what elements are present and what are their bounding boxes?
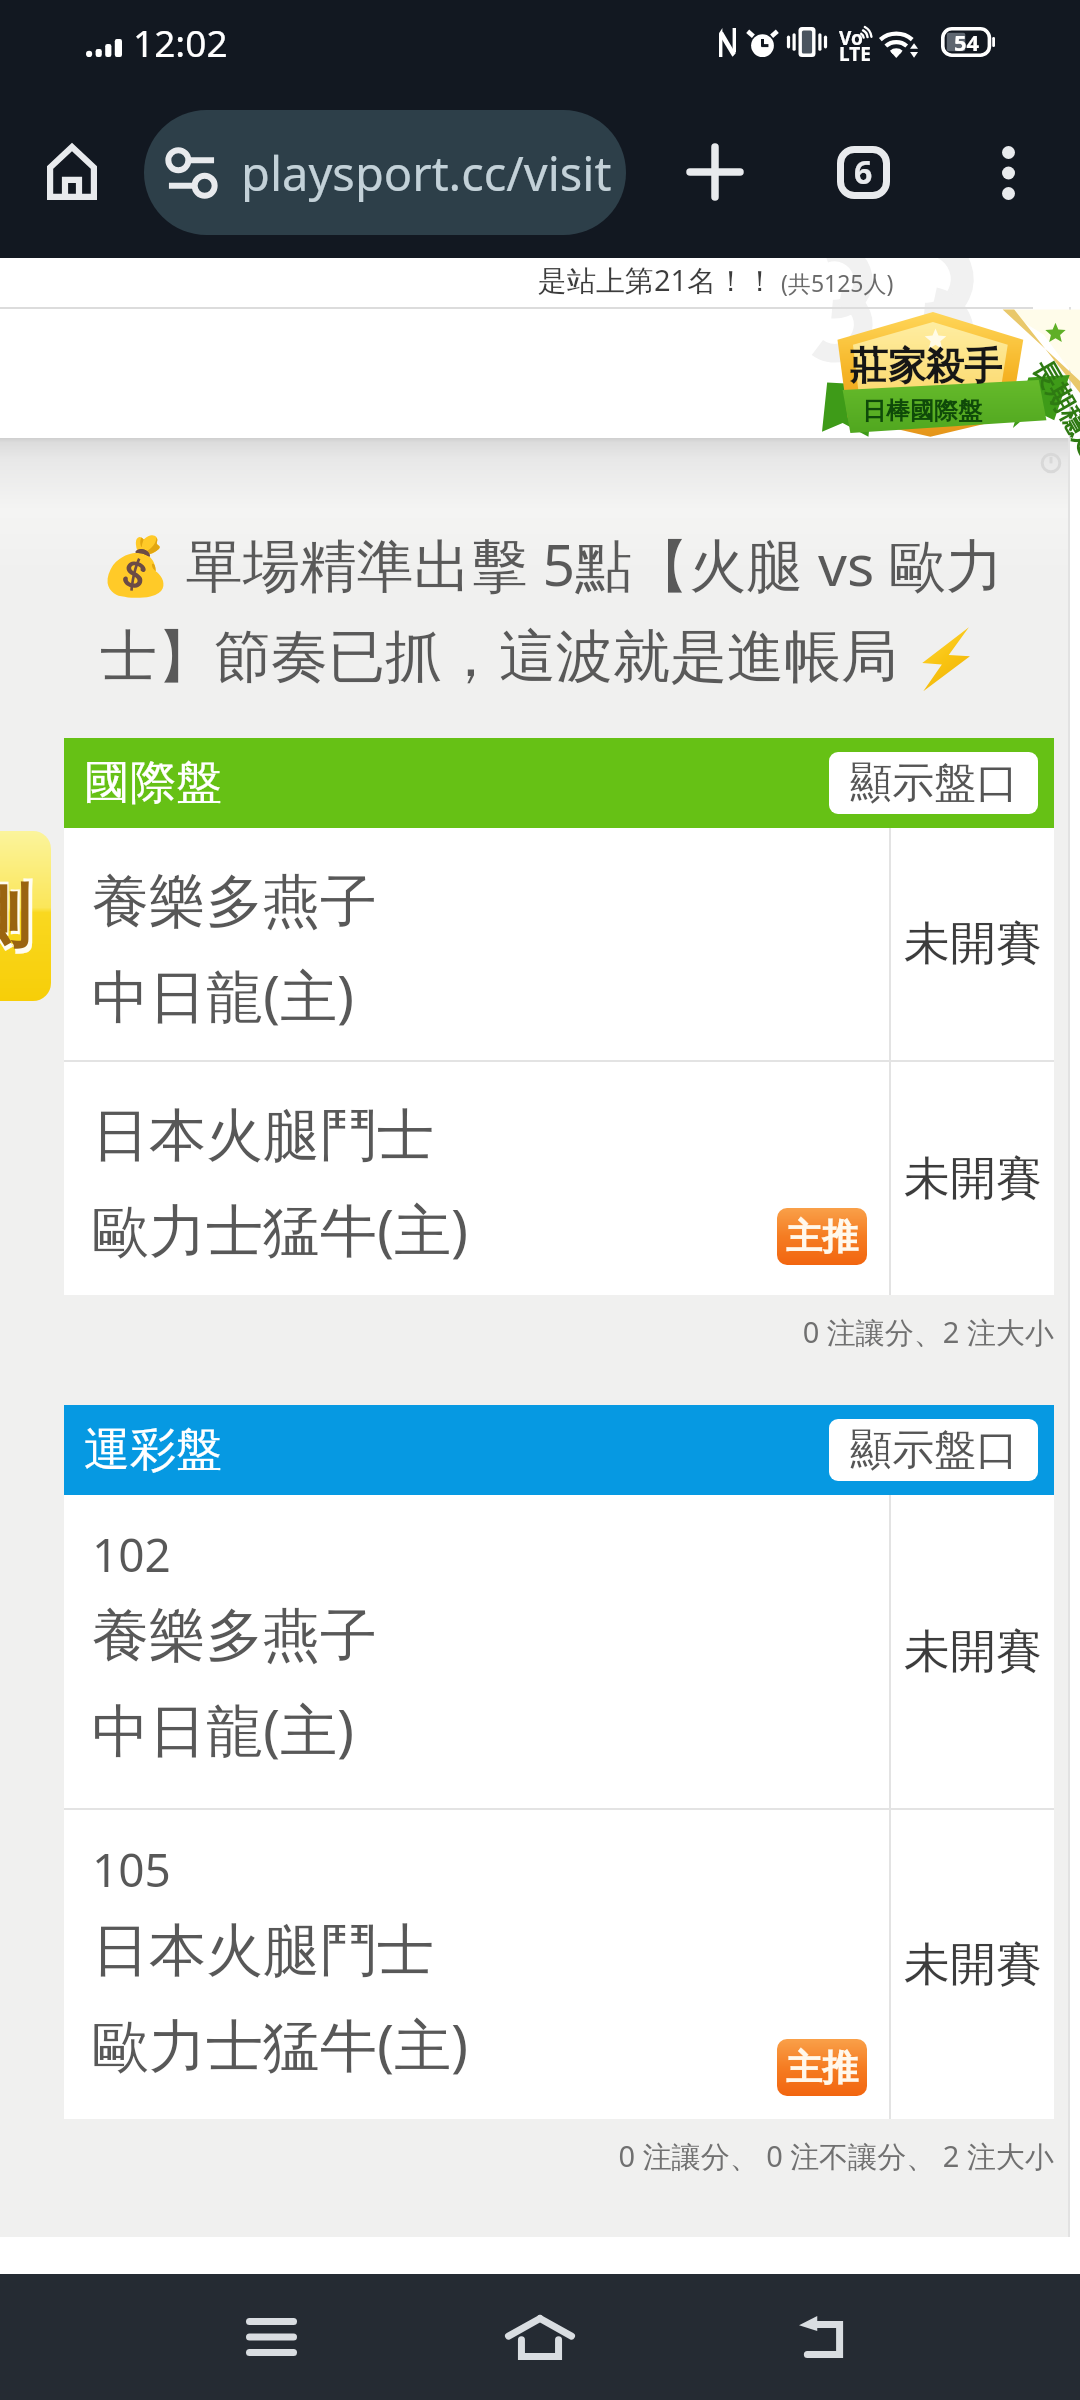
staticText: 養樂多燕子 <box>92 1600 377 1672</box>
staticText: 顯示盤口 <box>850 1424 1018 1477</box>
staticText: 測 <box>0 871 34 967</box>
staticText: 未開賽 <box>904 915 1042 973</box>
staticText: 未開賽 <box>904 1936 1042 1994</box>
button[interactable]: 105 <box>64 1810 1054 2119</box>
staticText: 0 注讓分、 0 注不讓分、 2 注大小 <box>64 2136 1054 2176</box>
button[interactable]: 運彩盤 <box>64 1405 1054 1495</box>
button[interactable]: 主推 <box>777 1208 867 1265</box>
button[interactable]: 日本火腿鬥士 <box>64 1062 1054 1295</box>
staticText: 主推 <box>786 2045 858 2090</box>
staticText: 54 <box>954 27 980 57</box>
staticText: 未開賽 <box>904 1623 1042 1681</box>
staticText: 102 <box>92 1523 171 1586</box>
staticText: 日本火腿鬥士 <box>92 1100 434 1172</box>
staticText: 中日龍(主) <box>92 956 355 1034</box>
staticText: 中日龍(主) <box>92 1690 355 1768</box>
staticText: 6 <box>854 150 873 194</box>
staticText: 測 <box>0 875 30 961</box>
staticText: Vo <box>839 25 863 51</box>
button[interactable]: 顯示盤口 <box>829 752 1038 814</box>
staticText: 養樂多燕子 <box>92 866 377 938</box>
button[interactable]: Home <box>470 2274 610 2400</box>
button[interactable]: 主推 <box>777 2039 867 2096</box>
button[interactable]: 國際盤 <box>64 738 1054 828</box>
staticText: 主推 <box>786 1214 858 1259</box>
staticText: 日棒國際盤 <box>862 396 982 426</box>
staticText: 運彩盤 <box>84 1421 222 1479</box>
staticText: 日本火腿鬥士 <box>92 1915 434 1987</box>
staticText: 國際盤 <box>84 754 222 812</box>
button[interactable]: New tab <box>672 129 758 215</box>
staticText: LTE <box>839 41 871 67</box>
button[interactable]: Tabs <box>820 129 906 215</box>
staticText: 歐力士猛牛(主) <box>92 2005 469 2083</box>
button[interactable]: playsport.cc/visit <box>144 110 626 235</box>
button[interactable]: 養樂多燕子 <box>64 828 1054 1060</box>
button[interactable]: Recent apps <box>201 2274 341 2400</box>
staticText: playsport.cc/visit <box>241 141 612 205</box>
button[interactable]: Prediction tab <box>0 831 51 1001</box>
staticText: 未開賽 <box>904 1150 1042 1208</box>
staticText: 是站上第21名！！ <box>538 260 775 300</box>
staticText: 105 <box>92 1838 171 1901</box>
button[interactable]: Home <box>32 132 112 212</box>
button[interactable]: 102 <box>64 1495 1054 1808</box>
staticText: (共5125人) <box>781 267 894 298</box>
button[interactable]: More options <box>965 129 1052 216</box>
button[interactable]: Back <box>754 2274 894 2400</box>
staticText: 長期穩定 <box>1025 354 1080 465</box>
button[interactable]: 顯示盤口 <box>829 1419 1038 1481</box>
staticText: 💰 單場精準出擊 5點【火腿 vs 歐力士】節奏已抓，這波就是進帳局 <box>100 525 1016 693</box>
staticText: 顯示盤口 <box>850 757 1018 810</box>
staticText: 12:02 <box>133 17 228 67</box>
staticText: 0 注讓分、2 注大小 <box>64 1312 1054 1352</box>
staticText: 莊家殺手 <box>850 342 1002 390</box>
staticText: 歐力士猛牛(主) <box>92 1190 469 1268</box>
